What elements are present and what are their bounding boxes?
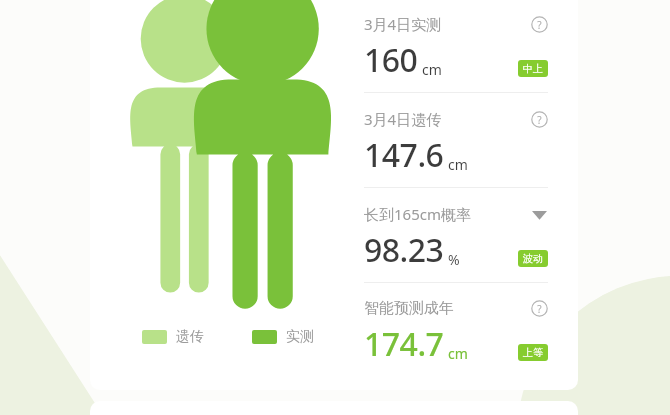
staticText: 上等: [523, 346, 543, 359]
staticText: 98.23: [364, 228, 444, 272]
staticText: 智能预测成年: [364, 299, 454, 318]
staticText: ?: [537, 302, 542, 316]
button[interactable]: Help about 智能预测成年: [531, 300, 548, 317]
button[interactable]: 实测: [250, 326, 316, 348]
staticText: 3月4日遗传: [364, 109, 442, 129]
button[interactable]: 3月4日遗传: [364, 93, 548, 187]
staticText: 160: [364, 38, 418, 82]
staticText: 遗传: [176, 328, 204, 346]
staticText: 中上: [523, 62, 543, 75]
button[interactable]: Expand 长到165cm概率: [531, 206, 548, 223]
staticText: 波动: [523, 252, 543, 265]
staticText: cm: [448, 155, 468, 174]
button[interactable]: Help about 3月4日实测: [531, 16, 548, 33]
button[interactable]: 中上: [518, 60, 548, 77]
staticText: %: [448, 250, 460, 269]
staticText: 174.7: [364, 322, 444, 366]
staticText: cm: [422, 60, 442, 79]
staticText: 长到165cm概率: [364, 204, 471, 224]
staticText: 实测: [286, 328, 314, 346]
staticText: ?: [537, 113, 542, 127]
button[interactable]: 遗传: [140, 326, 206, 348]
staticText: 147.6: [364, 133, 444, 177]
staticText: cm: [448, 344, 468, 363]
button[interactable]: 智能预测成年: [364, 283, 548, 376]
button[interactable]: 3月4日实测: [364, 0, 548, 92]
staticText: 3月4日实测: [364, 14, 442, 34]
staticText: ?: [537, 18, 542, 32]
button[interactable]: Help about 3月4日遗传: [531, 111, 548, 128]
button[interactable]: 上等: [518, 344, 548, 361]
button[interactable]: 波动: [518, 250, 548, 267]
button[interactable]: 长到165cm概率: [364, 188, 548, 282]
